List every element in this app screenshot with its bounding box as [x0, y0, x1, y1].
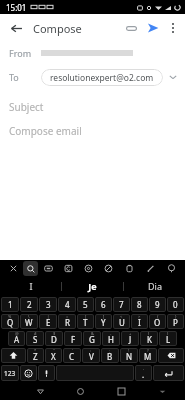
button[interactable]: Location [161, 261, 182, 276]
staticText: = [66, 314, 69, 319]
staticText: ( [148, 331, 150, 336]
button[interactable]: 123 [1, 365, 19, 381]
button[interactable]: From [0, 42, 185, 64]
staticText: " [53, 348, 55, 353]
button[interactable]: \ [20, 314, 38, 329]
button[interactable]: Expand recipients [163, 67, 183, 87]
button[interactable]: < [113, 314, 130, 329]
staticText: O [154, 317, 161, 328]
button[interactable]: Clipboard [119, 261, 140, 276]
button[interactable]: Themes [98, 261, 119, 276]
button[interactable]: , [135, 365, 152, 381]
button[interactable]: I [0, 277, 61, 295]
staticText: < [120, 314, 123, 319]
button[interactable]: | [39, 314, 57, 329]
button[interactable]: GIF [58, 261, 78, 276]
staticText: S [33, 334, 38, 345]
staticText: N [126, 351, 133, 362]
button[interactable]: & [83, 331, 101, 346]
button[interactable]: { [149, 314, 166, 329]
button[interactable]: : [82, 348, 100, 363]
staticText: X [51, 351, 56, 362]
staticText: { [157, 314, 159, 319]
button[interactable]: ) [159, 331, 177, 346]
button[interactable]: = [58, 314, 76, 329]
button[interactable]: Handwriting [140, 261, 161, 276]
button[interactable]: More options [164, 19, 182, 37]
button[interactable]: Voice input [38, 365, 55, 381]
button[interactable]: Subject [0, 97, 185, 117]
button[interactable]: Home [71, 382, 89, 400]
button[interactable]: Search [23, 261, 38, 276]
staticText: 123 [4, 369, 16, 378]
button[interactable]: Je [62, 277, 123, 295]
button[interactable]: Emoji [20, 365, 37, 381]
staticText: $ [53, 331, 56, 336]
button[interactable]: Enter [153, 365, 184, 381]
staticText: 15:01 [6, 2, 27, 13]
staticText: ] [103, 314, 105, 319]
staticText: C [69, 351, 75, 362]
staticText: ; [109, 348, 111, 353]
button[interactable]: Space [56, 365, 134, 381]
button[interactable]: ; [101, 348, 119, 363]
button[interactable]: Close toolbar [3, 261, 23, 276]
button[interactable]: Settings [78, 261, 98, 276]
button[interactable]: To [0, 65, 185, 89]
button[interactable]: 2 [20, 297, 38, 312]
button[interactable]: Compose email [0, 121, 185, 141]
button[interactable]: * [27, 348, 44, 363]
button[interactable]: > [131, 314, 148, 329]
button[interactable]: 1 [1, 297, 19, 312]
button[interactable]: [ [77, 314, 94, 329]
button[interactable]: 8 [131, 297, 148, 312]
staticText: 0 [173, 299, 178, 310]
button[interactable]: 7 [113, 297, 130, 312]
staticText: T [83, 317, 88, 328]
button[interactable]: 4 [58, 297, 76, 312]
button[interactable]: 3 [39, 297, 57, 312]
button[interactable]: 6 [95, 297, 112, 312]
staticText: - [110, 331, 112, 336]
staticText: Z [33, 351, 38, 362]
staticText: 1 [8, 299, 13, 310]
button[interactable]: ' [63, 348, 81, 363]
button[interactable]: Back [6, 18, 26, 38]
button[interactable]: Attach file [120, 17, 142, 39]
button[interactable]: - [102, 331, 120, 346]
button[interactable]: % [1, 314, 19, 329]
button[interactable]: _ [64, 331, 82, 346]
staticText: B [107, 351, 113, 362]
button[interactable]: 9 [149, 297, 166, 312]
staticText: J [129, 334, 132, 345]
staticText: > [138, 314, 141, 319]
staticText: W [25, 317, 33, 328]
staticText: [ [85, 314, 87, 319]
button[interactable]: ] [95, 314, 112, 329]
staticText: F [71, 334, 76, 345]
button[interactable]: ! [120, 348, 138, 363]
button[interactable]: ( [140, 331, 158, 346]
button[interactable]: 0 [167, 297, 184, 312]
staticText: _ [72, 331, 74, 336]
button[interactable]: Dia [124, 277, 185, 295]
button[interactable]: Backspace [158, 348, 184, 363]
button[interactable]: Recent apps [112, 382, 130, 400]
button[interactable]: ? [139, 348, 157, 363]
button[interactable]: } [167, 314, 184, 329]
button[interactable]: Stickers [38, 261, 58, 276]
button[interactable]: Send [142, 17, 164, 39]
button[interactable]: Back [31, 382, 49, 400]
button[interactable]: 5 [77, 297, 94, 312]
button[interactable]: Shift [1, 348, 26, 363]
button[interactable]: " [45, 348, 62, 363]
button[interactable]: @ [8, 331, 25, 346]
staticText: A [14, 334, 20, 345]
button[interactable]: $ [45, 331, 63, 346]
button[interactable]: Hide keyboard [153, 382, 171, 400]
button[interactable]: + [121, 331, 139, 346]
staticText: 5 [83, 299, 88, 310]
staticText: | [47, 314, 50, 319]
staticText: ! [128, 348, 130, 353]
button[interactable]: # [26, 331, 44, 346]
